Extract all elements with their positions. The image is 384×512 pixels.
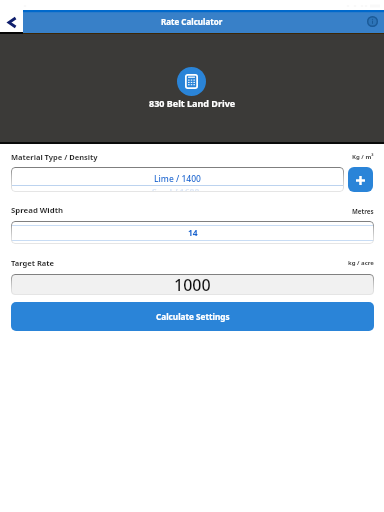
button[interactable]: Information	[361, 10, 383, 32]
staticText: Spread Width	[11, 205, 64, 216]
staticText: kg / acre	[348, 259, 374, 267]
staticText: Material Type / Density	[11, 152, 98, 162]
staticText: Kg / m³	[352, 153, 374, 161]
staticText: 1000	[174, 274, 211, 295]
staticText: 830 Belt Land Drive	[149, 97, 236, 109]
button[interactable]: Calculate Settings	[11, 302, 374, 331]
button[interactable]: Back	[0, 0, 23, 32]
button[interactable]: Lime / 1400	[11, 167, 344, 192]
staticText: Calculate Settings	[156, 311, 230, 322]
staticText: Target Rate	[11, 258, 55, 268]
staticText: Rate Calculator	[161, 16, 223, 27]
staticText: 14	[188, 227, 198, 239]
staticText: Lime / 1400	[154, 173, 201, 185]
staticText: Metres	[352, 207, 374, 215]
button[interactable]: Add material	[348, 167, 373, 192]
staticText: Sand / 1600	[152, 187, 200, 192]
button[interactable]: 14	[11, 221, 374, 244]
